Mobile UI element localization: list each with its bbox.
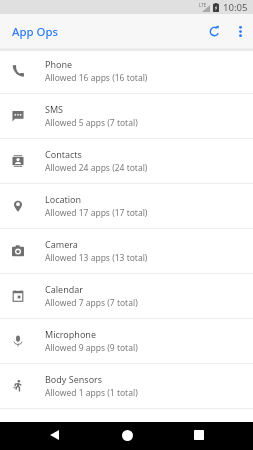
staticText: Phone (45, 58, 73, 70)
button[interactable]: Home (109, 422, 145, 448)
staticText: Allowed 1 apps (1 total) (45, 387, 138, 399)
staticText: Allowed 16 apps (16 total) (45, 72, 148, 84)
button[interactable]: Camera (0, 229, 253, 274)
staticText: 10:05 (223, 1, 248, 14)
button[interactable]: Refresh (200, 17, 228, 45)
staticText: SMS (45, 103, 64, 115)
button[interactable]: Calendar (0, 274, 253, 319)
button[interactable]: Phone (0, 49, 253, 94)
staticText: LTE (199, 2, 207, 8)
button[interactable]: Microphone (0, 319, 253, 364)
staticText: Calendar (45, 283, 83, 295)
staticText: Location (45, 193, 82, 205)
staticText: Allowed 7 apps (7 total) (45, 297, 138, 309)
button[interactable]: Location (0, 184, 253, 229)
staticText: Body Sensors (45, 373, 103, 385)
staticText: App Ops (12, 24, 59, 40)
button[interactable]: Back (36, 422, 72, 448)
staticText: Allowed 24 apps (24 total) (45, 162, 148, 174)
staticText: Allowed 5 apps (7 total) (45, 117, 138, 129)
staticText: Allowed 9 apps (9 total) (45, 342, 138, 354)
staticText: Microphone (45, 328, 96, 340)
staticText: Allowed 17 apps (17 total) (45, 207, 148, 219)
staticText: Allowed 13 apps (13 total) (45, 252, 148, 264)
button[interactable]: Contacts (0, 139, 253, 184)
staticText: Camera (45, 238, 78, 250)
button[interactable]: SMS (0, 94, 253, 139)
staticText: Contacts (45, 148, 82, 160)
button[interactable]: More options (228, 19, 253, 44)
button[interactable]: Body Sensors (0, 364, 253, 409)
button[interactable]: Recents (181, 422, 217, 448)
